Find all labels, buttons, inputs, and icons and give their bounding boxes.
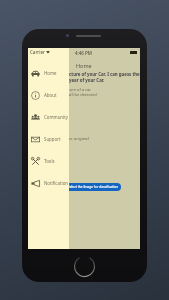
staticText: Take a picture of a car. — [50, 87, 92, 92]
staticText: Home — [44, 70, 57, 76]
button[interactable]: Community — [28, 106, 69, 128]
staticText: About — [44, 92, 57, 98]
staticText: 4:46 PM — [75, 50, 92, 56]
button[interactable]: Notification — [28, 172, 69, 194]
button[interactable]: Tools — [28, 150, 69, 172]
staticText: Community — [44, 114, 69, 120]
button[interactable]: Home — [28, 62, 69, 84]
staticText: Select the Image for classification — [68, 185, 119, 189]
staticText: cture of your Car. I can guess the year … — [69, 71, 142, 83]
staticText: Identify the original — [50, 136, 89, 142]
staticText: Tools — [44, 158, 55, 164]
button[interactable]: About — [28, 84, 69, 106]
staticText: The year will be detected — [50, 92, 97, 97]
staticText: Notification — [44, 180, 69, 186]
button[interactable]: Support — [28, 128, 69, 150]
staticText: Carrier — [30, 49, 45, 55]
staticText: Home — [76, 62, 92, 69]
staticText: Support — [44, 136, 61, 142]
button[interactable]: Select the Image for classification — [66, 183, 121, 191]
